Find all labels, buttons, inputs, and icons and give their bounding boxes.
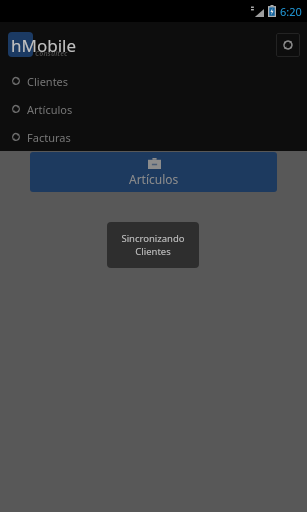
- staticText: Sincronizando Clientes: [121, 232, 185, 258]
- button[interactable]: Artículos: [30, 152, 277, 192]
- staticText: Clientes: [27, 74, 69, 89]
- button[interactable]: Artículos: [0, 95, 307, 123]
- staticText: Artículos: [27, 102, 73, 117]
- staticText: hMobile: [11, 34, 77, 57]
- staticText: 6:20: [280, 4, 302, 19]
- staticText: Consultec: [35, 49, 68, 59]
- staticText: Facturas: [27, 130, 71, 145]
- button[interactable]: Clientes: [0, 67, 307, 95]
- button[interactable]: Facturas: [0, 123, 307, 151]
- staticText: Artículos: [129, 171, 179, 187]
- button[interactable]: Sincronizar: [276, 33, 300, 57]
